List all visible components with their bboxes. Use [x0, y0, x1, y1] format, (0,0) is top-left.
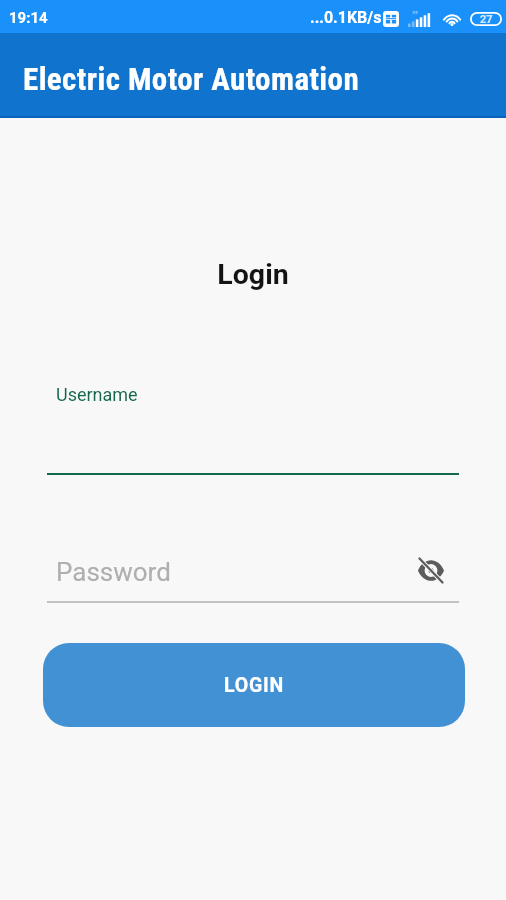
button[interactable]: LOGIN [43, 643, 465, 727]
button[interactable]: Show password [410, 549, 452, 591]
staticText: Password [56, 557, 171, 587]
staticText: 19:14 [9, 9, 48, 27]
staticText: Login [0, 258, 506, 291]
button[interactable]: Username [47, 368, 459, 478]
staticText: 27 [480, 13, 493, 26]
staticText: LOGIN [224, 674, 285, 697]
staticText: ...0.1KB/s [310, 8, 382, 27]
staticText: Electric Motor Automation [23, 61, 360, 97]
staticText: Username [56, 384, 138, 405]
